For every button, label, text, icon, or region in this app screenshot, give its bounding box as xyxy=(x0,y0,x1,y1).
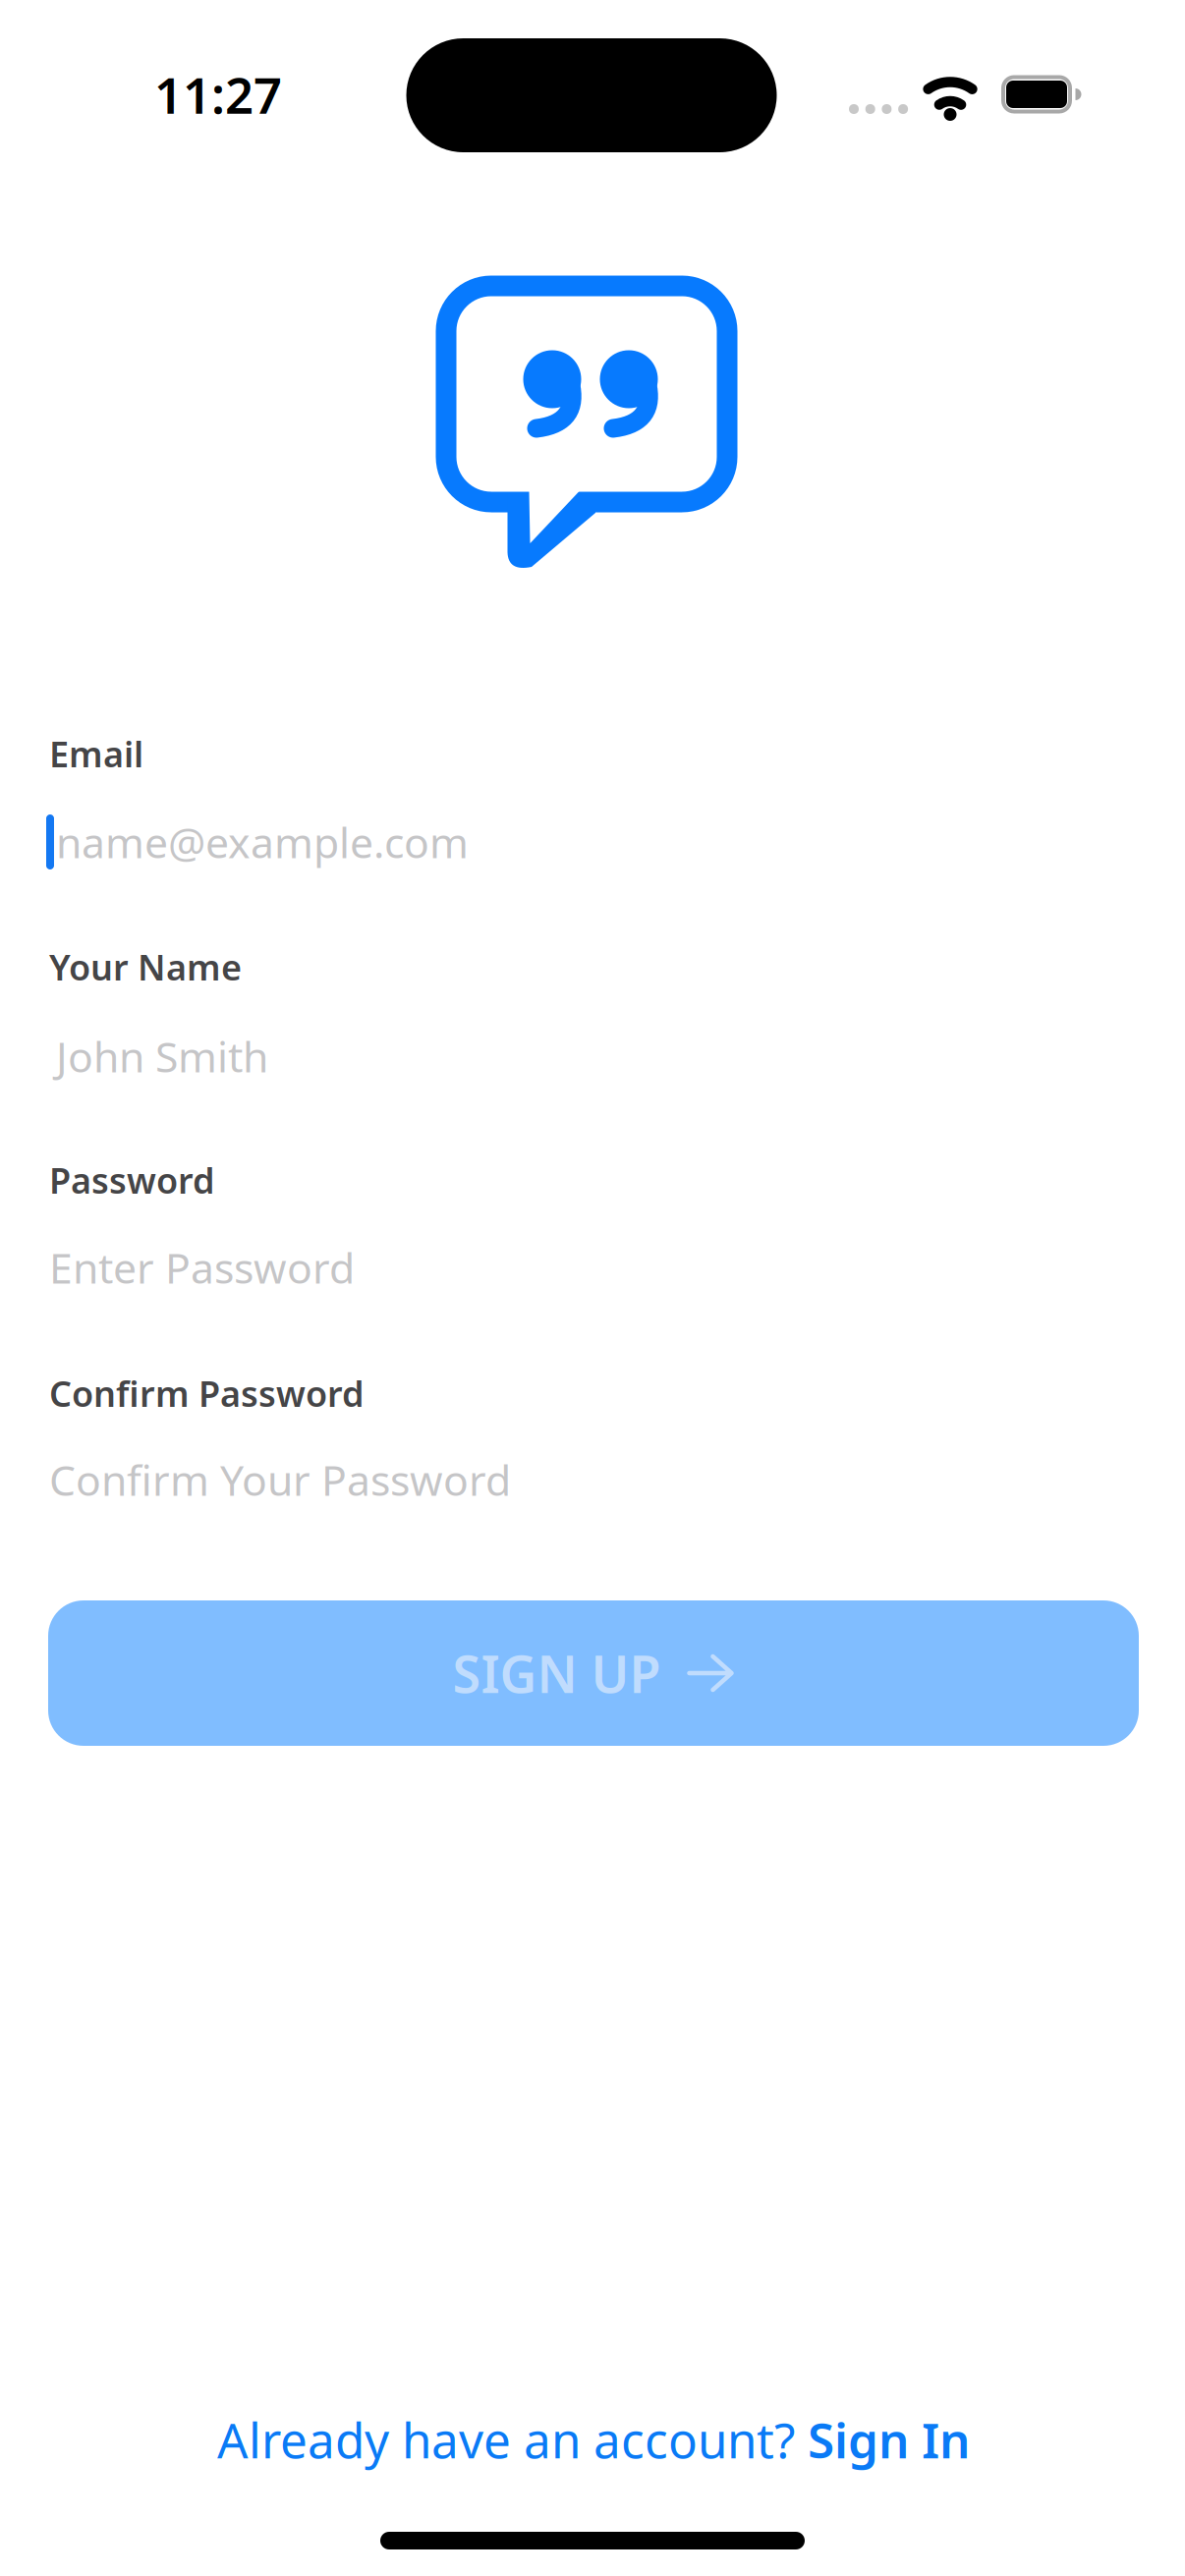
staticText: Email xyxy=(49,730,143,777)
button[interactable]: SIGN UP xyxy=(48,1600,1139,1746)
button[interactable]: Already have an account? xyxy=(217,2407,970,2472)
staticText: Your Name xyxy=(49,943,242,990)
staticText: Confirm Your Password xyxy=(49,1452,511,1507)
button[interactable]: name@example.com xyxy=(46,791,1139,893)
staticText: Password xyxy=(49,1156,215,1203)
staticText: name@example.com xyxy=(56,814,469,870)
staticText: 11:27 xyxy=(154,61,282,127)
staticText: SIGN UP xyxy=(452,1639,661,1707)
staticText: Already have an account? xyxy=(217,2407,808,2472)
button[interactable]: Enter Password xyxy=(49,1216,1136,1318)
staticText: John Smith xyxy=(56,1028,268,1084)
staticText: Sign In xyxy=(808,2407,970,2472)
staticText: Confirm Password xyxy=(49,1370,365,1417)
button[interactable]: John Smith xyxy=(56,1005,1129,1107)
button[interactable]: Confirm Your Password xyxy=(49,1428,1136,1531)
staticText: Enter Password xyxy=(49,1240,355,1295)
